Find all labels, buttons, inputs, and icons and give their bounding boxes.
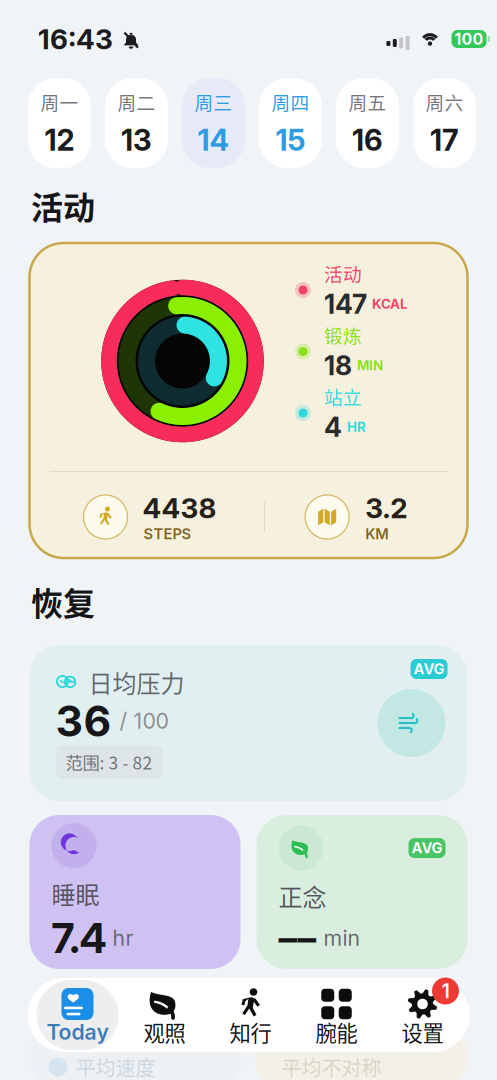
button[interactable]: 周五 — [336, 78, 399, 168]
staticText: 周五 — [348, 88, 386, 115]
staticText: STEPS — [143, 525, 191, 543]
staticText: 4438 — [142, 491, 216, 525]
staticText: 周三 — [194, 88, 232, 115]
staticText: HR — [347, 419, 366, 435]
staticText: 周四 — [271, 88, 309, 115]
button[interactable]: 周六 — [413, 78, 476, 168]
button[interactable]: 睡眠 — [29, 815, 240, 969]
staticText: 腕能 — [315, 1017, 357, 1047]
button[interactable]: 观照 — [121, 980, 207, 1050]
staticText: 活动 — [324, 260, 362, 287]
staticText: 17 — [430, 122, 459, 158]
button[interactable]: 周三 — [182, 78, 245, 168]
staticText: 睡眠 — [51, 876, 99, 911]
button[interactable]: 周四 — [259, 78, 322, 168]
staticText: –– — [278, 915, 316, 960]
staticText: 3.2 — [365, 491, 407, 525]
button[interactable]: 腕能 — [293, 980, 379, 1050]
staticText: 36 — [55, 695, 111, 747]
staticText: 16 — [352, 122, 383, 158]
button[interactable]: 知行 — [207, 980, 293, 1050]
staticText: 14 — [197, 122, 229, 158]
staticText: 7.4 — [51, 913, 106, 963]
staticText: 锻炼 — [324, 321, 362, 348]
staticText: 100 — [454, 29, 483, 49]
staticText: Today — [46, 1019, 108, 1045]
staticText: 周六 — [425, 88, 463, 115]
staticText: 1 — [441, 979, 449, 1003]
staticText: 16:43 — [38, 22, 113, 56]
staticText: 观照 — [143, 1017, 185, 1047]
staticText: 范围: 3 - 82 — [65, 749, 152, 775]
staticText: 147 — [324, 288, 367, 320]
staticText: 活动 — [31, 182, 95, 229]
staticText: AVG — [411, 839, 442, 857]
staticText: 日均压力 — [88, 665, 184, 699]
staticText: 15 — [275, 122, 305, 158]
staticText: 12 — [44, 122, 74, 158]
button[interactable]: AVG — [29, 645, 467, 801]
button[interactable]: Today — [33, 980, 121, 1050]
button[interactable]: AVG — [256, 815, 467, 969]
staticText: AVG — [413, 660, 444, 678]
staticText: 周一 — [40, 88, 78, 115]
staticText: 设置 — [401, 1017, 443, 1047]
button[interactable]: 周二 — [105, 78, 168, 168]
staticText: KCAL — [372, 296, 408, 312]
button[interactable]: 1 — [379, 980, 465, 1050]
button[interactable]: 周一 — [28, 78, 91, 168]
staticText: 平均不对称 — [281, 1052, 381, 1080]
staticText: 恢复 — [31, 578, 95, 625]
staticText: min — [323, 925, 360, 951]
staticText: 知行 — [229, 1017, 271, 1047]
staticText: / 100 — [119, 708, 168, 734]
staticText: hr — [112, 925, 133, 951]
staticText: 4 — [324, 411, 342, 443]
staticText: 正念 — [278, 878, 326, 913]
staticText: 站立 — [324, 383, 362, 410]
staticText: 平均速度 — [75, 1052, 155, 1080]
staticText: KM — [365, 525, 389, 543]
staticText: 13 — [121, 122, 152, 158]
staticText: 周二 — [117, 88, 155, 115]
staticText: MIN — [357, 357, 383, 373]
staticText: 18 — [324, 349, 352, 382]
